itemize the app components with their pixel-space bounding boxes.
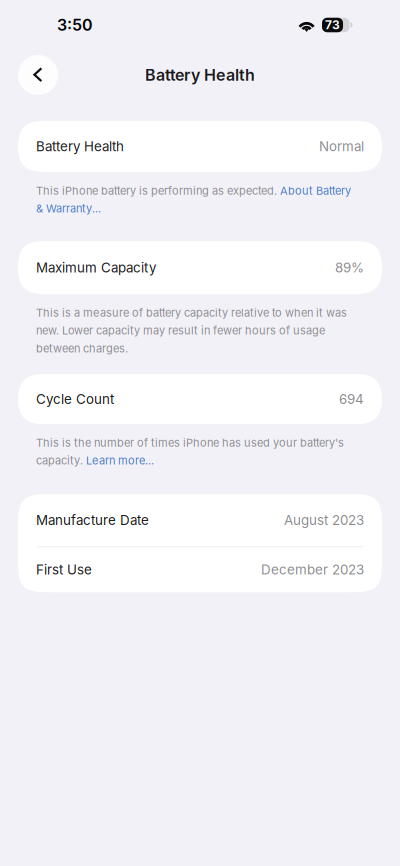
staticText: Manufacture Date [36, 512, 149, 528]
button[interactable]: Battery Health [18, 121, 382, 172]
button[interactable]: Manufacture Date [18, 494, 382, 546]
staticText: This iPhone battery is performing as exp… [36, 184, 351, 215]
staticText: First Use [36, 562, 92, 578]
button[interactable]: Cycle Count [18, 374, 382, 424]
staticText: 694 [339, 391, 364, 407]
staticText: Normal [319, 138, 364, 154]
staticText: This is a measure of battery capacity re… [36, 306, 347, 355]
staticText: 73 [325, 18, 340, 32]
staticText: August 2023 [284, 512, 364, 528]
button[interactable]: Back [18, 55, 58, 95]
staticText: This is the number of times iPhone has u… [36, 436, 344, 467]
button[interactable]: Maximum Capacity [18, 241, 382, 294]
staticText: Battery Health [36, 138, 124, 154]
staticText: December 2023 [261, 562, 364, 578]
staticText: 89% [335, 260, 364, 276]
staticText: Cycle Count [36, 391, 114, 407]
staticText: Maximum Capacity [36, 260, 156, 276]
button[interactable]: First Use [18, 547, 382, 592]
staticText: 3:50 [57, 15, 93, 35]
staticText: Battery Health [145, 65, 255, 85]
